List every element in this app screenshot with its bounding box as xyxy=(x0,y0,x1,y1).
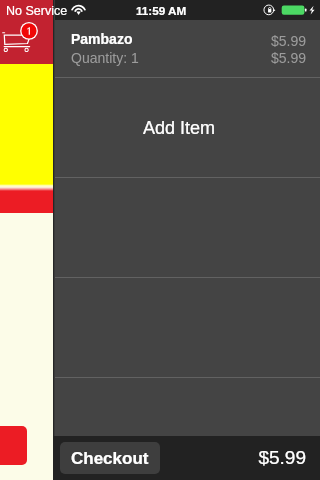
button[interactable]: Shopping cart xyxy=(0,0,53,64)
staticText: 11:59 AM xyxy=(136,4,187,17)
button[interactable]: Add to order xyxy=(0,426,27,465)
staticText: $5.99 xyxy=(236,50,306,66)
staticText: Checkout xyxy=(71,449,149,468)
staticText: Pambazo xyxy=(71,31,133,47)
button[interactable]: Pambazo xyxy=(53,20,320,77)
staticText: Add Item xyxy=(143,118,216,138)
staticText: Quantity: 1 xyxy=(71,50,139,66)
button[interactable]: Checkout xyxy=(60,442,160,474)
staticText: $5.99 xyxy=(234,447,306,468)
staticText: $5.99 xyxy=(236,33,306,49)
staticText: No Service xyxy=(6,4,68,18)
button[interactable]: Add Item xyxy=(53,78,320,177)
